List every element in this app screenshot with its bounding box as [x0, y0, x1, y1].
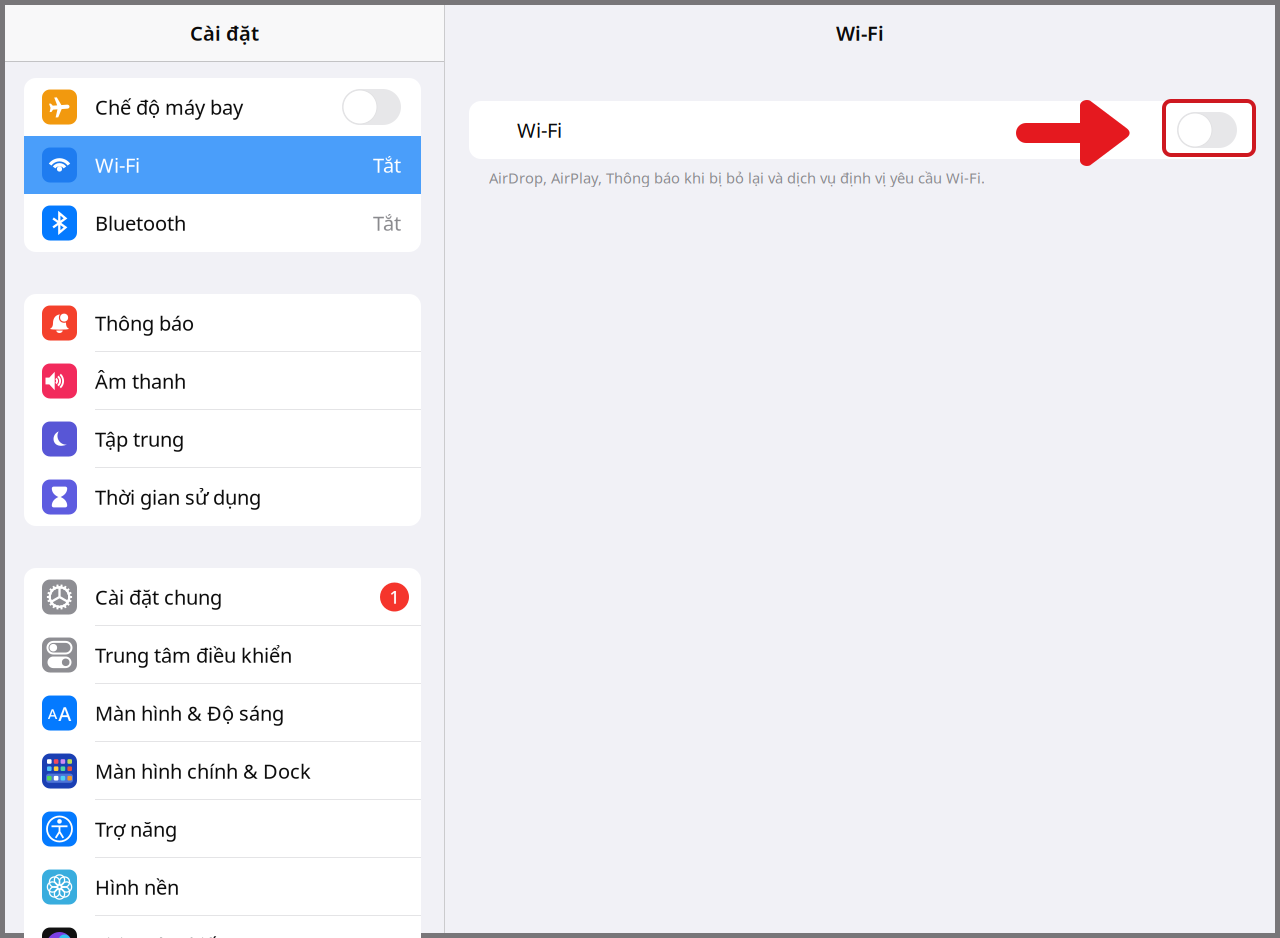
button[interactable]: Tập trung [24, 410, 421, 468]
button[interactable]: Trợ năng [24, 800, 421, 858]
button[interactable]: Hình nền [24, 858, 421, 916]
staticText: Âm thanh [95, 368, 186, 394]
staticText: Chế độ máy bay [95, 94, 243, 120]
button[interactable]: Wi-Fi [469, 101, 1256, 159]
staticText: AirDrop, AirPlay, Thông báo khi bị bỏ lạ… [489, 168, 985, 187]
button[interactable]: Màn hình chính & Dock [24, 742, 421, 800]
staticText: Tắt [373, 210, 401, 236]
staticText: Cài đặt chung [95, 584, 222, 610]
staticText: Wi-Fi [836, 20, 884, 46]
staticText: Tắt [373, 152, 401, 178]
staticText: Thông báo [95, 310, 194, 336]
staticText: 1 [389, 585, 399, 608]
staticText: A [58, 700, 71, 727]
button[interactable]: Thời gian sử dụng [24, 468, 421, 526]
staticText: Trợ năng [95, 816, 177, 842]
staticText: Trung tâm điều khiển [95, 642, 292, 668]
staticText: Wi-Fi [95, 152, 140, 178]
button[interactable]: Siri & Tìm kiếm [24, 916, 421, 938]
button[interactable]: Bluetooth [24, 194, 421, 252]
staticText: A [48, 704, 58, 723]
staticText: Màn hình chính & Dock [95, 758, 311, 784]
staticText: Hình nền [95, 874, 179, 900]
button[interactable]: Thông báo [24, 294, 421, 352]
staticText: Tập trung [95, 426, 184, 452]
button[interactable]: Chế độ máy bay [24, 78, 421, 136]
button[interactable]: Trung tâm điều khiển [24, 626, 421, 684]
staticText: Màn hình & Độ sáng [95, 700, 284, 726]
staticText: Wi-Fi [517, 117, 562, 143]
staticText: Cài đặt [190, 20, 259, 46]
button[interactable]: A [24, 684, 421, 742]
staticText: Thời gian sử dụng [95, 484, 261, 510]
button[interactable]: Âm thanh [24, 352, 421, 410]
staticText: Bluetooth [95, 210, 186, 236]
button[interactable]: Wi-Fi [24, 136, 421, 194]
staticText: Siri & Tìm kiếm [95, 932, 235, 938]
button[interactable]: Cài đặt chung [24, 568, 421, 626]
